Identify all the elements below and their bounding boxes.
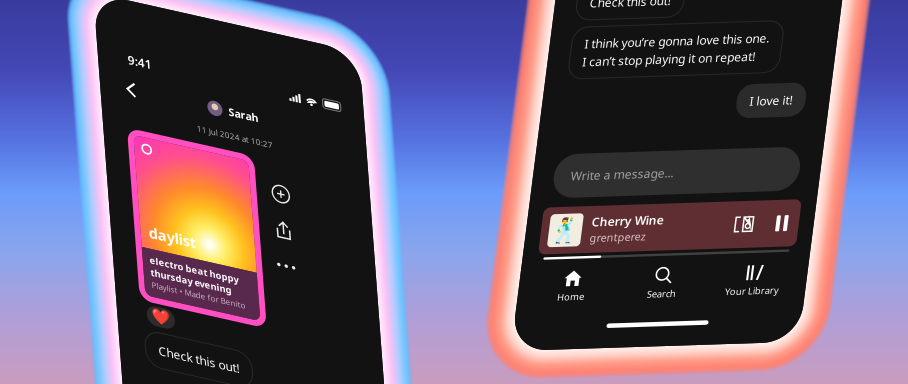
staticText: I love it! <box>781 101 824 117</box>
button[interactable]: Back <box>109 62 137 90</box>
staticText: 🕺 <box>597 219 627 246</box>
button[interactable]: Home <box>581 272 672 305</box>
staticText: grentperez <box>638 234 694 248</box>
staticText: Playlist • Made for Benito <box>128 264 222 275</box>
staticText: I think you’re gonna love this one. <box>608 38 793 54</box>
staticText: I can’t stop playing it on repeat! <box>608 56 781 72</box>
staticText: Cherry Wine <box>638 217 710 233</box>
staticText: thursday evening <box>128 251 209 263</box>
button[interactable]: Pause <box>823 224 835 240</box>
staticText: 11 Jul 2024 at 10:27 <box>186 95 262 106</box>
button[interactable]: Search <box>672 272 762 305</box>
staticText: Check this out! <box>130 327 211 343</box>
staticText: electro beat hoppy <box>128 239 217 251</box>
staticText: Write a message... <box>611 170 714 186</box>
button[interactable]: More options <box>258 212 275 229</box>
button[interactable]: Your Library <box>762 272 853 305</box>
staticText: Search <box>702 293 731 305</box>
button[interactable]: Share <box>258 176 275 193</box>
button[interactable]: Connect to a device <box>781 223 801 241</box>
staticText: daylist <box>129 207 176 227</box>
staticText: Check this out! <box>608 0 689 13</box>
staticText: ❤️ <box>126 293 144 309</box>
staticText: Your Library <box>781 293 835 305</box>
button[interactable]: Add to playlist <box>258 140 275 157</box>
